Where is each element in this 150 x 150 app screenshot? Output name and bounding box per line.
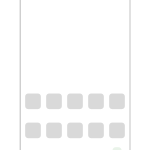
- button[interactable]: [109, 93, 125, 109]
- button[interactable]: [46, 123, 62, 138]
- button[interactable]: [25, 93, 41, 109]
- button[interactable]: [67, 93, 83, 109]
- button[interactable]: [113, 147, 122, 150]
- button[interactable]: [88, 123, 104, 138]
- button[interactable]: [46, 93, 62, 109]
- button[interactable]: [67, 123, 83, 138]
- button[interactable]: [109, 123, 125, 138]
- button[interactable]: [88, 93, 104, 109]
- button[interactable]: [25, 123, 41, 138]
